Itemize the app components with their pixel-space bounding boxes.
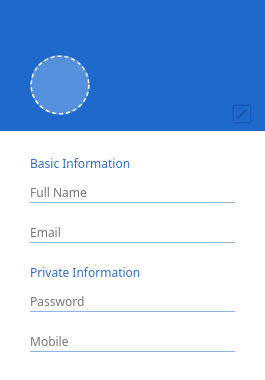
button[interactable]: Edit profile xyxy=(231,103,253,125)
button[interactable]: Password xyxy=(0,289,265,312)
staticText: Email xyxy=(30,224,61,240)
button[interactable]: Full Name xyxy=(0,180,265,203)
staticText: Mobile xyxy=(30,333,69,349)
staticText: Password xyxy=(30,293,85,309)
staticText: Basic Information xyxy=(30,155,131,171)
button[interactable]: Change profile photo xyxy=(30,55,90,115)
button[interactable]: Mobile xyxy=(0,329,265,352)
staticText: Private Information xyxy=(30,264,141,280)
staticText: Full Name xyxy=(30,184,87,200)
button[interactable]: Email xyxy=(0,220,265,243)
